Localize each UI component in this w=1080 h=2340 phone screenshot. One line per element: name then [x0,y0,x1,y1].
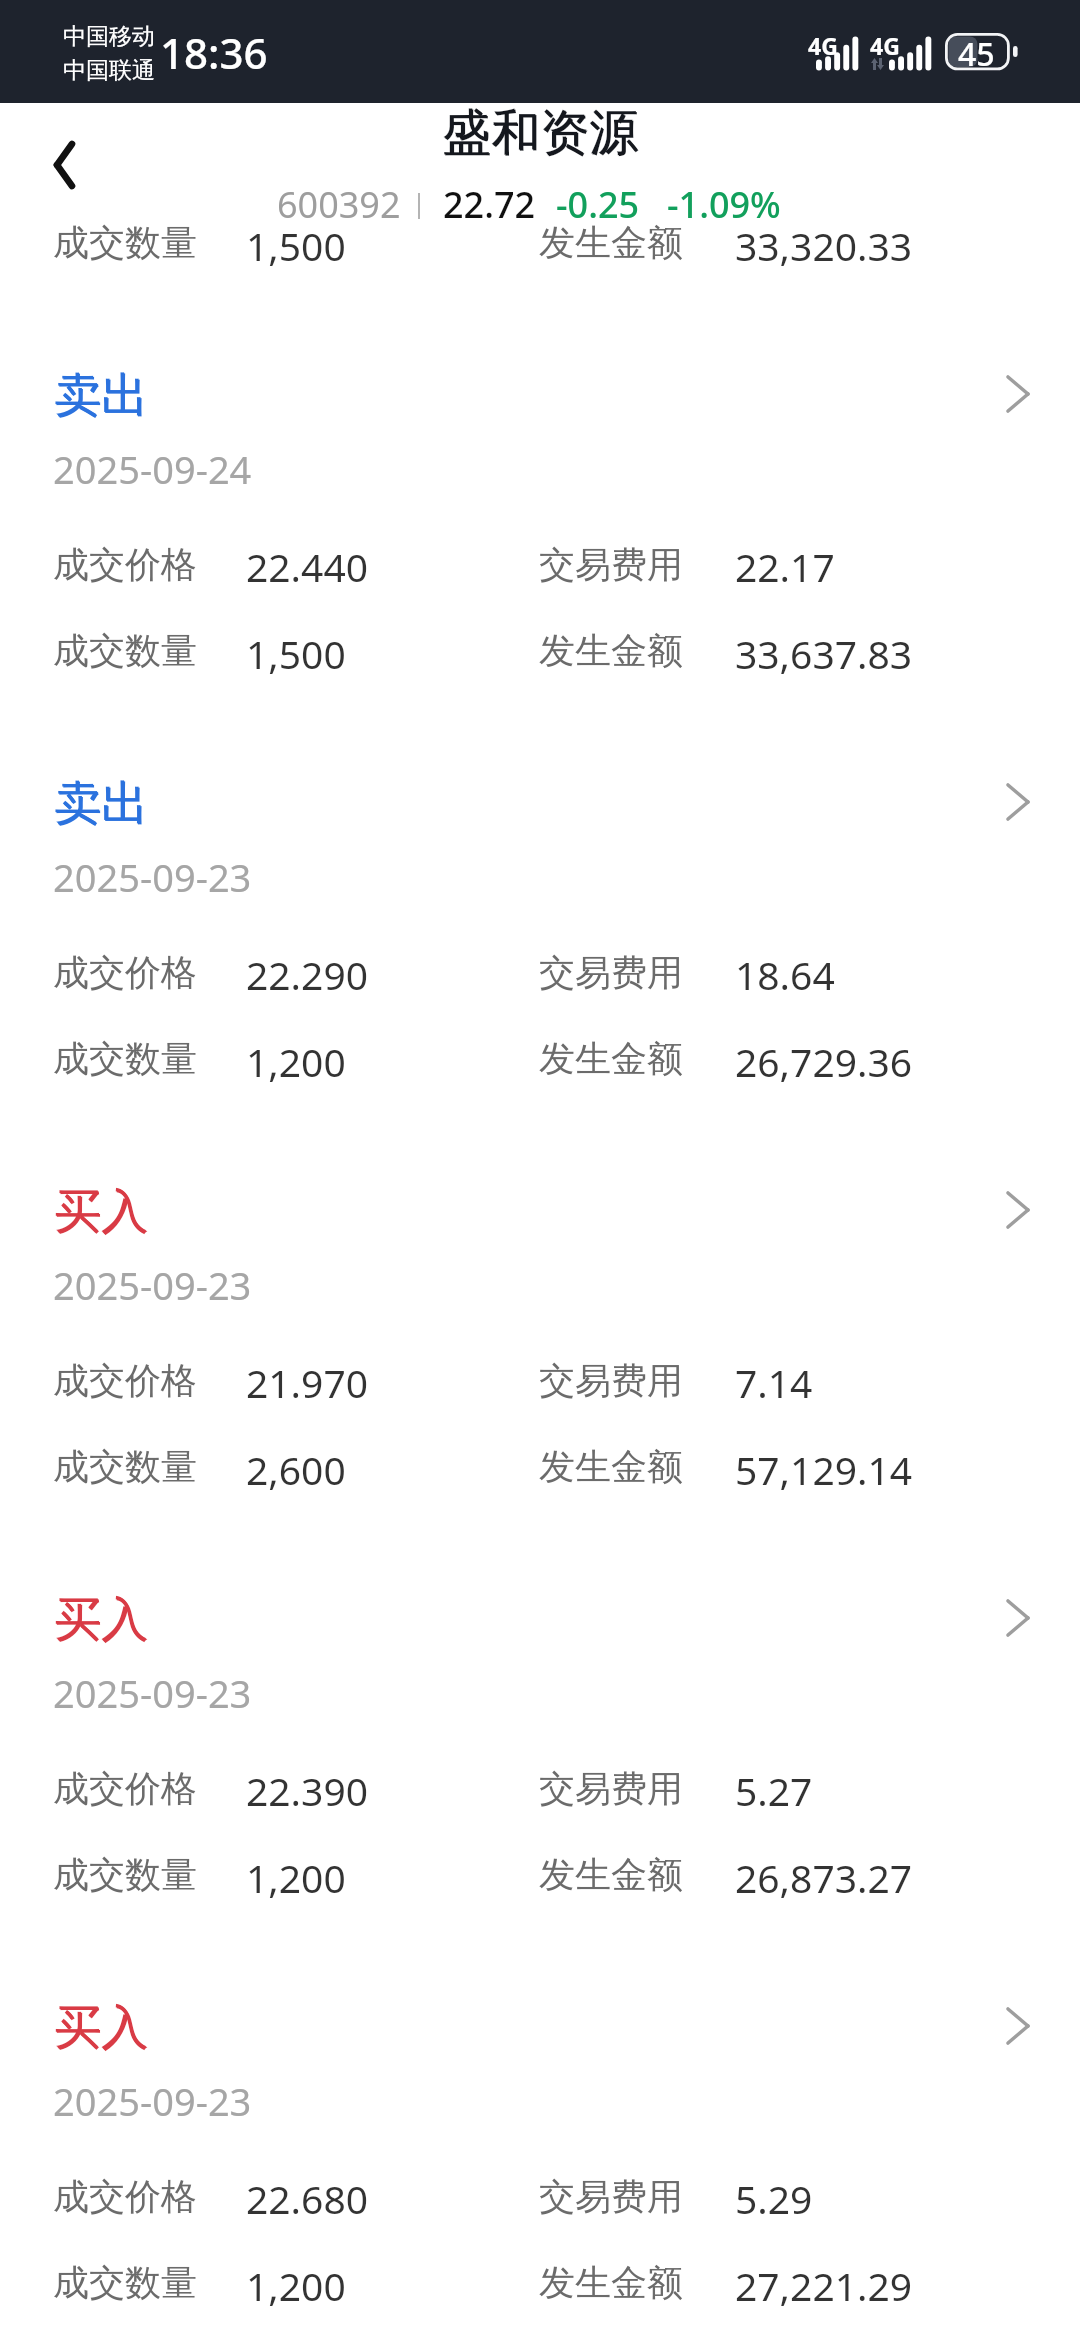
staticText: 成交价格 [53,950,197,995]
button[interactable]: 卖出 [0,0,1080,318]
staticText: 2025-09-24 [53,443,252,495]
staticText: 成交价格 [53,134,197,179]
staticText: 交易费用 [539,1358,683,1403]
staticText: 发生金额 [539,1036,683,1081]
staticText: 卖出 [54,366,148,425]
staticText: 盛和资源 [443,102,639,164]
staticText: 发生金额 [539,2260,683,2305]
staticText: 18.64 [735,948,835,1001]
staticText: 买入 [54,1590,148,1649]
staticText: 成交数量 [53,2260,197,2305]
staticText: 26,729.36 [735,1035,913,1088]
staticText: 发生金额 [539,628,683,673]
staticText: 21.970 [246,1356,368,1409]
staticText: 18:36 [160,24,268,81]
staticText: 中国移动 [63,22,155,51]
staticText: 交易费用 [539,950,683,995]
staticText: 600392 [277,180,401,229]
staticText: 买入 [55,1182,149,1241]
staticText: 成交价格 [53,542,197,587]
staticText: 2,600 [246,1443,346,1496]
staticText: 4G [808,30,838,61]
staticText: 买入 [54,1998,148,2057]
staticText: 2025-09-23 [53,851,252,903]
staticText: 5.29 [735,2172,813,2225]
button[interactable]: 买入 [0,1134,1080,1542]
staticText: 33,637.83 [735,627,913,680]
button[interactable]: 买入 [0,1542,1080,1950]
staticText: 买入 [54,1182,148,1241]
staticText: 成交价格 [53,1766,197,1811]
staticText: 成交数量 [53,220,197,265]
staticText: 7.14 [735,1356,813,1409]
staticText: 发生金额 [539,1444,683,1489]
staticText: 2025-09-23 [53,1259,252,1311]
button[interactable]: 卖出 [0,318,1080,726]
staticText: 成交数量 [53,1852,197,1897]
staticText: 5.27 [735,1764,813,1817]
staticText: 成交数量 [53,1444,197,1489]
staticText: 2025-09-23 [53,1667,252,1719]
staticText: 成交价格 [53,1358,197,1403]
staticText: 26,873.27 [735,1851,913,1904]
staticText: 27,221.29 [735,2259,913,2312]
staticText: 发生金额 [539,1852,683,1897]
staticText: 成交数量 [53,1036,197,1081]
staticText: 22.440 [246,540,368,593]
staticText: 成交价格 [53,2174,197,2219]
staticText: 交易费用 [539,1766,683,1811]
staticText: 33,320.33 [735,219,913,272]
staticText: 盛和资源 [442,102,638,164]
staticText: 22.17 [735,540,835,593]
staticText: 4G [870,30,900,61]
staticText: 2025-09-25 [53,35,252,87]
staticText: 成交数量 [53,628,197,673]
staticText: 买入 [55,1590,149,1649]
staticText: 交易费用 [539,134,683,179]
staticText: 22.290 [246,948,368,1001]
staticText: 22.680 [246,2172,368,2225]
staticText: 1,500 [246,627,346,680]
staticText: 1,200 [246,2259,346,2312]
staticText: 22.72 [443,180,536,229]
staticText: 22.390 [246,1764,368,1817]
staticText: 57,129.14 [735,1443,913,1496]
staticText: -0.25 [556,180,640,229]
button[interactable]: 买入 [0,1950,1080,2340]
staticText: 2025-09-23 [53,2075,252,2127]
staticText: 1,200 [246,1851,346,1904]
staticText: 卖出 [54,774,148,833]
staticText: 交易费用 [539,2174,683,2219]
staticText: 1,200 [246,1035,346,1088]
staticText: 45 [958,32,995,72]
button[interactable]: Back [22,122,110,210]
staticText: 交易费用 [539,542,683,587]
staticText: 买入 [55,1998,149,2057]
staticText: 卖出 [55,774,149,833]
staticText: 中国联通 [63,56,155,85]
staticText: 1,500 [246,219,346,272]
staticText: 卖出 [55,366,149,425]
button[interactable]: 卖出 [0,726,1080,1134]
staticText: -1.09% [667,180,781,229]
staticText: 发生金额 [539,220,683,265]
